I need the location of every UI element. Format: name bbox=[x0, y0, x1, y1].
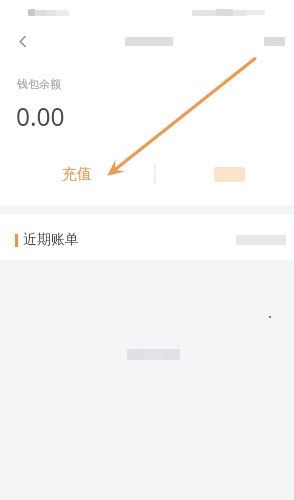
button[interactable] bbox=[154, 158, 294, 190]
staticText: 钱包余额 bbox=[17, 77, 61, 91]
button[interactable]: 充值 bbox=[0, 158, 154, 190]
staticText: 充值 bbox=[62, 165, 92, 184]
button[interactable]: Back bbox=[10, 29, 34, 53]
staticText: 近期账单 bbox=[23, 231, 79, 249]
staticText: 0.00 bbox=[16, 100, 65, 133]
